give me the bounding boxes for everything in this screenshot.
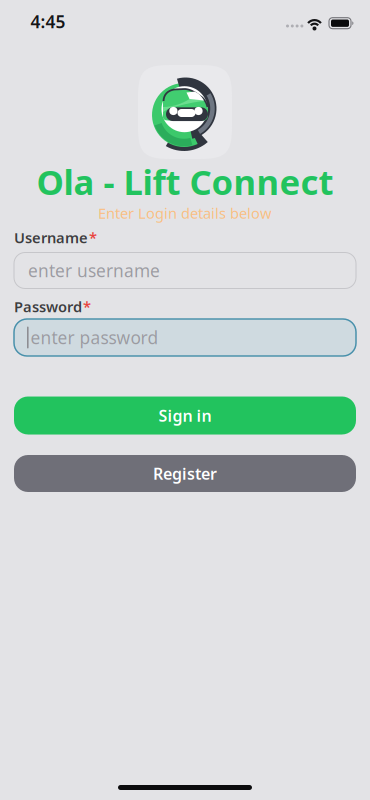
staticText: Sign in xyxy=(158,405,211,426)
staticText: Username xyxy=(14,228,88,247)
button[interactable]: enter username xyxy=(14,252,356,288)
button[interactable]: enter password xyxy=(14,319,356,356)
staticText: Password xyxy=(14,297,82,316)
staticText: enter username xyxy=(28,259,160,282)
staticText: * xyxy=(89,228,97,247)
button[interactable]: Register xyxy=(14,455,356,492)
staticText: Ola - Lift Connect xyxy=(36,158,333,204)
staticText: * xyxy=(83,297,91,316)
staticText: enter password xyxy=(31,326,159,349)
staticText: 4:45 xyxy=(30,10,65,33)
staticText: Register xyxy=(153,463,217,484)
staticText: Enter Login details below xyxy=(98,203,272,223)
button[interactable]: Sign in xyxy=(14,396,356,434)
